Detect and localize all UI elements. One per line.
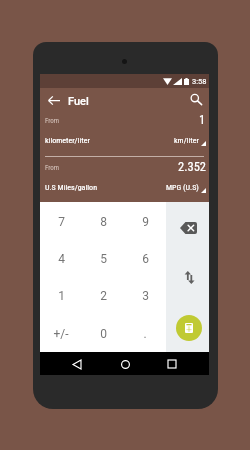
button[interactable]: 5 — [82, 239, 124, 276]
staticText: 6 — [142, 252, 149, 266]
button[interactable]: Search — [186, 89, 206, 109]
staticText: 3 — [142, 289, 149, 303]
button[interactable]: Recents — [162, 354, 182, 374]
staticText: Fuel — [68, 95, 89, 108]
staticText: From — [45, 164, 60, 172]
button[interactable]: From — [40, 157, 209, 202]
staticText: 1 — [199, 112, 206, 127]
button[interactable]: 9 — [124, 202, 166, 239]
staticText: +/- — [53, 327, 69, 341]
button[interactable]: 4 — [40, 239, 82, 276]
staticText: 4 — [58, 252, 65, 266]
staticText: 2 — [100, 289, 107, 303]
staticText: 7 — [58, 215, 65, 229]
staticText: 9 — [142, 215, 149, 229]
staticText: 1 — [58, 289, 65, 303]
staticText: U.S Miles/gallon — [45, 183, 98, 192]
staticText: From — [45, 117, 60, 125]
staticText: 3:58 — [192, 77, 207, 86]
staticText: 0 — [100, 327, 107, 341]
button[interactable]: Swap units — [179, 267, 199, 287]
button[interactable]: 8 — [82, 202, 124, 239]
button[interactable]: Home — [115, 354, 135, 374]
button[interactable]: Back — [67, 354, 87, 374]
staticText: MPG (U.S) — [166, 183, 199, 192]
button[interactable]: From — [40, 110, 209, 156]
staticText: 8 — [100, 215, 107, 229]
staticText: kilometer/liter — [45, 136, 90, 145]
button[interactable]: 3 — [124, 276, 166, 314]
button[interactable]: +/- — [40, 314, 82, 352]
staticText: 2.352 — [178, 159, 206, 174]
button[interactable]: 7 — [40, 202, 82, 239]
button[interactable]: Backspace — [177, 219, 199, 237]
staticText: . — [143, 327, 147, 341]
staticText: km/liter — [174, 136, 199, 145]
button[interactable]: 6 — [124, 239, 166, 276]
button[interactable]: 0 — [82, 314, 124, 352]
button[interactable]: Calculator — [176, 315, 202, 341]
button[interactable]: 2 — [82, 276, 124, 314]
staticText: 5 — [100, 252, 107, 266]
button[interactable]: 1 — [40, 276, 82, 314]
button[interactable]: Back — [44, 90, 64, 110]
